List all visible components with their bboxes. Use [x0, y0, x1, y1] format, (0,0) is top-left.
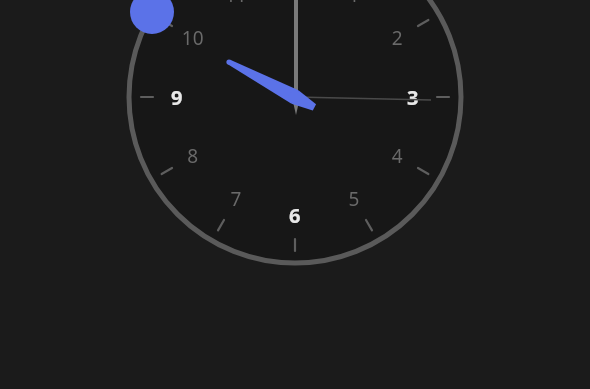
button[interactable]: Analog clock face	[0, 0, 590, 389]
